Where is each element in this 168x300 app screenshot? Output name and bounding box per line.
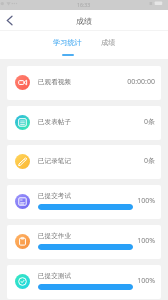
button[interactable]: 已提交作业 (7, 225, 161, 259)
button[interactable]: 学习统计 (51, 38, 84, 56)
staticText: 学习统计 (53, 38, 82, 47)
button[interactable]: Back (0, 11, 19, 30)
staticText: 100% (137, 236, 155, 246)
button[interactable]: 成绩 (99, 38, 118, 56)
button[interactable]: 已提交考试 (7, 185, 161, 219)
button[interactable]: 已记录笔记 (7, 145, 161, 179)
staticText: 0条 (143, 117, 155, 127)
button[interactable]: 已提交测试 (7, 265, 161, 299)
button[interactable]: 已观看视频 (7, 66, 161, 100)
staticText: 已观看视频 (38, 78, 71, 86)
staticText: 成绩 (101, 38, 116, 47)
staticText: 100% (137, 276, 155, 286)
staticText: 0条 (143, 156, 155, 166)
staticText: 已提交作业 (38, 232, 71, 240)
staticText: 00:00:00 (127, 77, 155, 87)
staticText: 100% (137, 196, 155, 206)
staticText: 16:33 (77, 1, 91, 8)
staticText: 成绩 (76, 16, 92, 26)
staticText: 已提交考试 (38, 192, 71, 200)
button[interactable]: 已发表帖子 (7, 106, 161, 140)
staticText: 已提交测试 (38, 272, 71, 280)
staticText: 已发表帖子 (38, 118, 71, 126)
staticText: 已记录笔记 (38, 157, 71, 165)
